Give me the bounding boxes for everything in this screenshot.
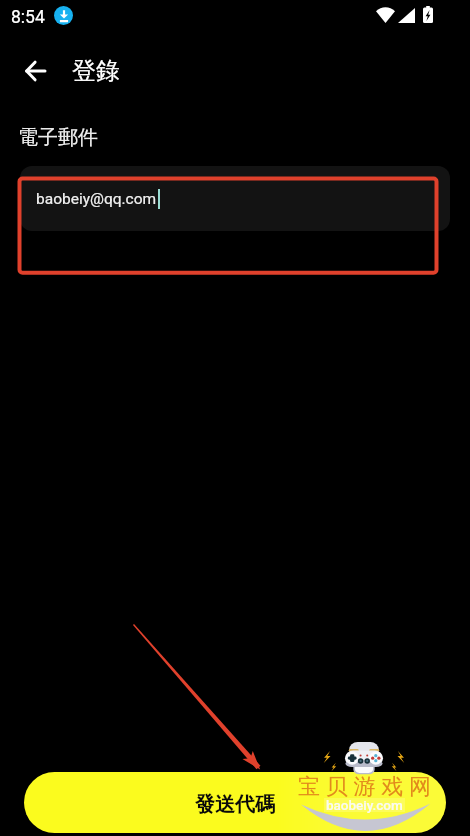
button[interactable]: baobeiy@qq.com — [20, 166, 450, 231]
button[interactable]: 發送代碼 — [24, 772, 446, 833]
button[interactable]: Back — [13, 48, 58, 93]
staticText: 宝贝游戏网 — [295, 773, 434, 801]
staticText: baobeiy@qq.com — [36, 190, 157, 208]
staticText: 發送代碼 — [195, 792, 275, 817]
staticText: baobeiy.com — [326, 797, 403, 813]
staticText: 電子郵件 — [18, 125, 98, 150]
staticText: 8:54 — [11, 7, 45, 28]
staticText: 登錄 — [72, 56, 120, 86]
